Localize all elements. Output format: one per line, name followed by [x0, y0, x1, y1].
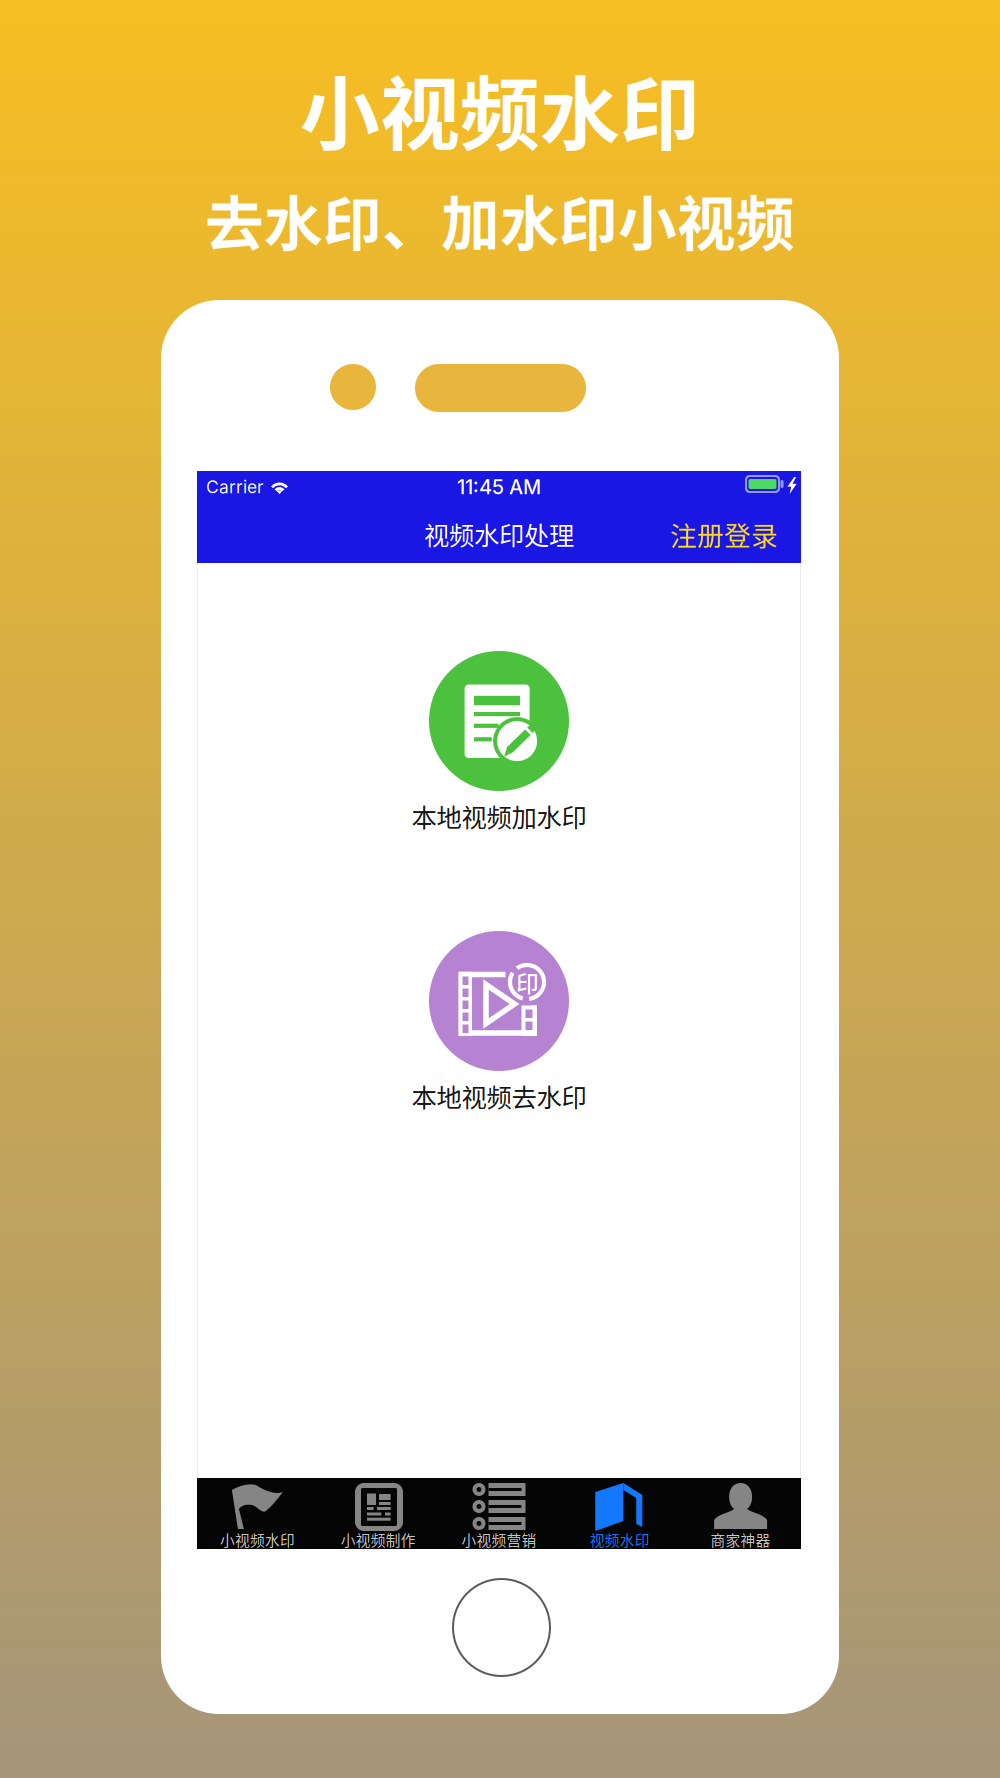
- staticText: 11:45 AM: [457, 475, 541, 499]
- staticText: 去水印、加水印小视频: [205, 177, 795, 262]
- button[interactable]: 小视频营销: [439, 1478, 559, 1549]
- staticText: 印: [516, 966, 539, 998]
- staticText: 商家神器: [711, 1529, 771, 1550]
- button[interactable]: 小视频制作: [318, 1478, 439, 1549]
- staticText: 本地视频加水印: [411, 798, 586, 834]
- button[interactable]: 本地视频加水印: [359, 630, 639, 812]
- button[interactable]: 小视频水印: [197, 1478, 318, 1549]
- staticText: 视频水印处理: [424, 516, 574, 552]
- button[interactable]: 印: [359, 910, 639, 1092]
- staticText: 小视频营销: [461, 1529, 536, 1550]
- staticText: 视频水印: [590, 1529, 650, 1550]
- staticText: 本地视频去水印: [411, 1078, 586, 1114]
- staticText: 小视频水印: [300, 50, 700, 166]
- staticText: 注册登录: [670, 515, 778, 553]
- staticText: 小视频制作: [341, 1529, 416, 1550]
- staticText: 小视频水印: [220, 1529, 295, 1550]
- button[interactable]: 商家神器: [680, 1478, 801, 1549]
- staticText: Carrier: [206, 476, 264, 497]
- button[interactable]: 注册登录: [666, 512, 778, 556]
- button[interactable]: 视频水印: [559, 1478, 680, 1549]
